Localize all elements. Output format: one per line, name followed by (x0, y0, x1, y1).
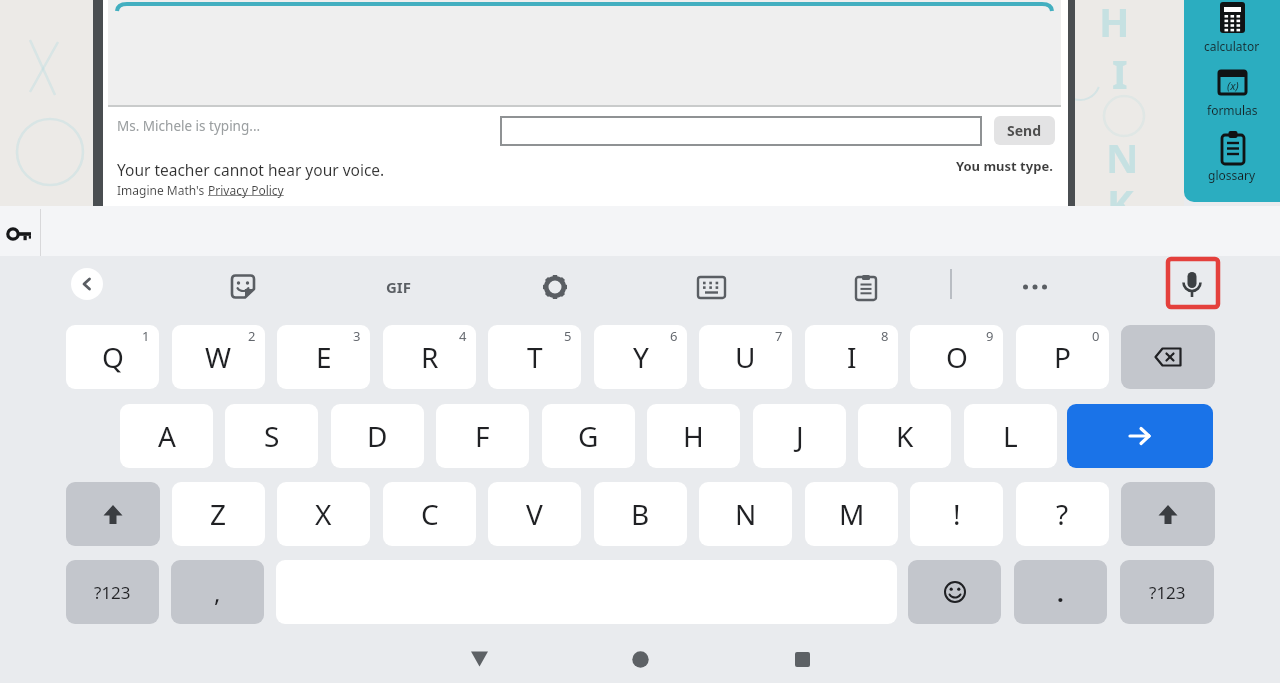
button[interactable]: U (699, 325, 792, 389)
button[interactable]: P (1016, 325, 1109, 389)
button[interactable] (2, 218, 38, 250)
button[interactable] (71, 268, 103, 300)
staticText: S (264, 417, 280, 455)
staticText: B (631, 495, 650, 533)
button[interactable]: Q (66, 325, 159, 389)
button[interactable]: N (699, 482, 792, 546)
staticText: (x) (1227, 78, 1239, 93)
button[interactable] (1121, 482, 1215, 546)
button[interactable]: ! (910, 482, 1003, 546)
button[interactable] (842, 263, 890, 311)
button[interactable]: F (436, 404, 529, 468)
button[interactable]: X (277, 482, 370, 546)
button[interactable] (531, 263, 579, 311)
staticText: glossary (1208, 167, 1256, 183)
staticText: E (316, 338, 332, 376)
staticText: , (214, 576, 221, 609)
staticText: 1 (142, 327, 150, 345)
staticText: Z (210, 495, 227, 533)
button[interactable]: A (120, 404, 213, 468)
staticText: Y (633, 338, 649, 376)
button[interactable]: . (1014, 560, 1107, 624)
button[interactable]: W (172, 325, 265, 389)
button[interactable] (219, 263, 267, 311)
staticText: T (527, 338, 543, 376)
button[interactable]: B (594, 482, 687, 546)
button[interactable]: ? (1016, 482, 1109, 546)
staticText: A (158, 417, 176, 455)
button[interactable]: ?123 (1120, 560, 1214, 624)
staticText: F (475, 417, 490, 455)
button[interactable] (687, 263, 735, 311)
button[interactable]: , (171, 560, 264, 624)
button[interactable] (1188, 0, 1278, 56)
button[interactable] (1067, 404, 1213, 468)
button[interactable] (1168, 263, 1216, 311)
button[interactable]: O (910, 325, 1003, 389)
button[interactable]: T (488, 325, 581, 389)
button[interactable]: R (383, 325, 476, 389)
button[interactable]: E (277, 325, 370, 389)
button[interactable]: Y (594, 325, 687, 389)
button[interactable]: K (858, 404, 951, 468)
staticText: ! (953, 495, 961, 533)
staticText: I (1112, 46, 1128, 98)
staticText: U (735, 338, 756, 376)
staticText: GIF (386, 277, 411, 297)
button[interactable] (778, 635, 826, 683)
button[interactable]: Z (172, 482, 265, 546)
staticText: R (421, 338, 439, 376)
button[interactable]: D (331, 404, 424, 468)
staticText: P (1054, 338, 1071, 376)
staticText: Ms. Michele is typing... (117, 117, 261, 135)
button[interactable]: M (805, 482, 898, 546)
staticText: Q (102, 338, 124, 376)
button[interactable]: ?123 (66, 560, 159, 624)
staticText: X (315, 495, 332, 533)
button[interactable] (616, 635, 664, 683)
staticText: J (796, 417, 804, 455)
staticText: 6 (670, 327, 678, 345)
button[interactable]: G (542, 404, 635, 468)
staticText: O (946, 338, 968, 376)
button[interactable] (455, 635, 503, 683)
staticText: Your teacher cannot hear your voice. (117, 159, 385, 180)
staticText: . (1057, 576, 1064, 609)
staticText: D (367, 417, 388, 455)
staticText: Imagine Math's (117, 182, 208, 198)
button[interactable] (1188, 66, 1278, 120)
button[interactable] (66, 482, 160, 546)
button[interactable]: Send (994, 116, 1055, 145)
button[interactable] (501, 117, 981, 145)
staticText: Send (1007, 121, 1042, 140)
staticText: K (896, 417, 914, 455)
button[interactable] (1188, 128, 1278, 185)
button[interactable]: V (488, 482, 581, 546)
staticText: ? (1056, 495, 1069, 533)
staticText: ?123 (94, 581, 131, 604)
staticText: L (1003, 417, 1018, 455)
staticText: V (526, 495, 543, 533)
staticText: You must type. (956, 157, 1053, 175)
button[interactable]: J (753, 404, 846, 468)
staticText: formulas (1207, 102, 1258, 118)
button[interactable]: Imagine Math's (117, 182, 284, 198)
button[interactable]: S (225, 404, 318, 468)
staticText: N (1106, 130, 1139, 182)
button[interactable]: I (805, 325, 898, 389)
button[interactable] (1011, 263, 1059, 311)
staticText: H (683, 417, 704, 455)
staticText: M (839, 495, 865, 533)
button[interactable]: C (383, 482, 476, 546)
staticText: 9 (986, 327, 994, 345)
staticText: G (578, 417, 599, 455)
button[interactable]: L (964, 404, 1057, 468)
button[interactable] (1121, 325, 1215, 389)
staticText: N (735, 495, 757, 533)
staticText: K (1107, 176, 1134, 228)
staticText: I (847, 338, 857, 376)
button[interactable]: H (647, 404, 740, 468)
button[interactable]: GIF (374, 263, 422, 311)
button[interactable] (908, 560, 1001, 624)
